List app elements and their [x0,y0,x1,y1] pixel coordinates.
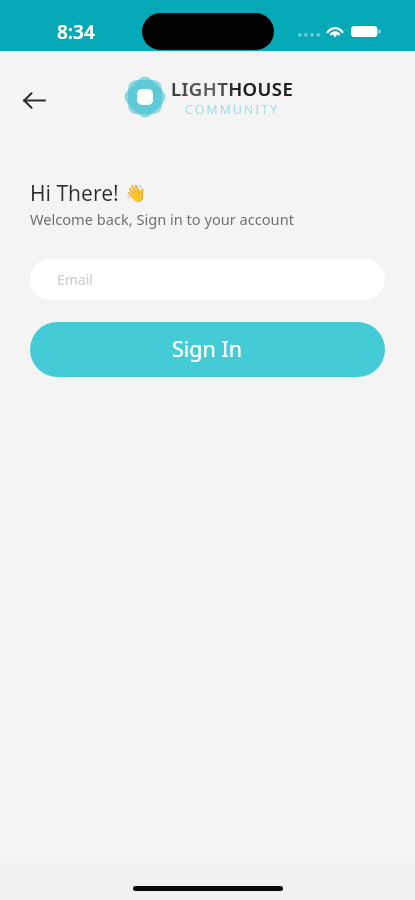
staticText: 8:34 [57,19,95,45]
staticText: Email [57,270,93,289]
staticText: LIGHTHOUSE [171,76,294,101]
button[interactable]: Sign In [30,322,385,377]
staticText: Hi There! [30,179,119,208]
staticText: COMMUNITY [185,101,280,118]
staticText: Sign In [172,334,243,363]
button[interactable]: Back [14,80,54,120]
button[interactable]: Email [30,259,385,300]
staticText: Welcome back, Sign in to your account [30,209,294,229]
staticText: 👋 [125,183,147,203]
